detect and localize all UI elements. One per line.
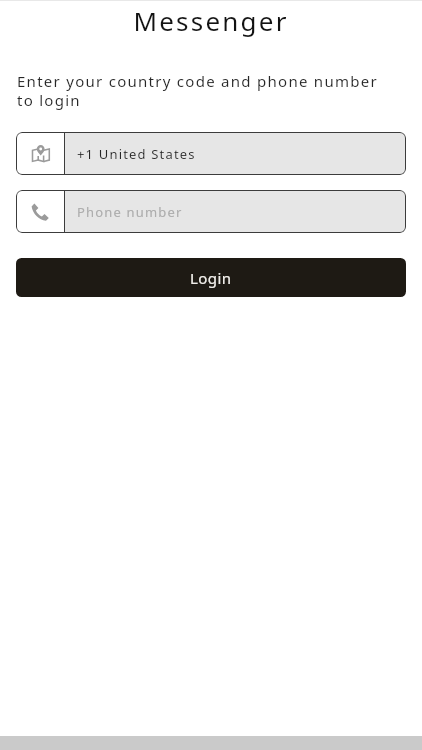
button[interactable]: Login	[16, 258, 406, 297]
staticText: +1 United States	[77, 145, 196, 163]
staticText: Messenger	[0, 3, 422, 38]
staticText: Login	[190, 268, 232, 288]
button[interactable]: Select country	[16, 132, 406, 175]
staticText: Enter your country code and phone number…	[17, 71, 414, 110]
button[interactable]: Phone number	[16, 190, 406, 233]
staticText: Phone number	[77, 203, 183, 221]
